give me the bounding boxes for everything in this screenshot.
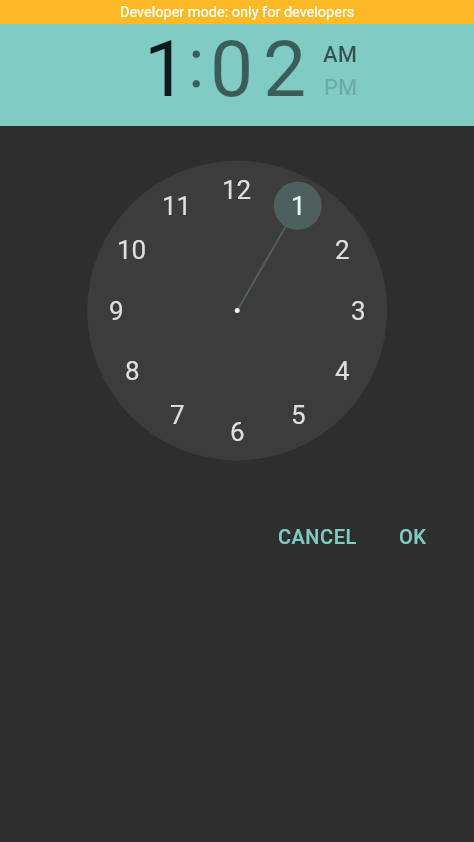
staticText: 9 bbox=[109, 296, 124, 326]
staticText: 12 bbox=[222, 175, 252, 205]
staticText: 1 bbox=[144, 25, 188, 115]
staticText: : bbox=[188, 24, 205, 104]
button[interactable]: 2 bbox=[0, 0, 48, 48]
button[interactable]: 1 bbox=[0, 0, 48, 48]
staticText: OK bbox=[399, 525, 427, 548]
button[interactable]: 5 bbox=[0, 0, 48, 48]
staticText: 2 bbox=[263, 25, 307, 115]
staticText: 5 bbox=[291, 400, 306, 430]
button[interactable]: 3 bbox=[0, 0, 48, 48]
button[interactable]: 6 bbox=[0, 0, 48, 48]
button[interactable]: AM bbox=[0, 0, 80, 40]
staticText: 0 bbox=[210, 25, 254, 115]
button[interactable]: 8 bbox=[0, 0, 48, 48]
staticText: AM bbox=[323, 42, 357, 68]
staticText: PM bbox=[324, 75, 358, 101]
button[interactable]: 11 bbox=[0, 0, 48, 48]
staticText: 10 bbox=[117, 235, 147, 265]
staticText: 7 bbox=[170, 400, 185, 430]
staticText: 6 bbox=[230, 417, 245, 447]
staticText: 2 bbox=[335, 235, 350, 265]
button[interactable]: 10 bbox=[0, 0, 48, 48]
staticText: 8 bbox=[125, 356, 140, 386]
staticText: 4 bbox=[335, 356, 350, 386]
button[interactable]: 7 bbox=[0, 0, 48, 48]
staticText: Developer mode: only for developers bbox=[120, 4, 355, 21]
staticText: CANCEL bbox=[278, 525, 357, 548]
button[interactable]: PM bbox=[0, 0, 80, 40]
button[interactable]: CANCEL bbox=[257, 512, 377, 560]
button[interactable]: 4 bbox=[0, 0, 48, 48]
staticText: 1 bbox=[291, 191, 306, 221]
staticText: 3 bbox=[351, 296, 366, 326]
button[interactable]: OK bbox=[373, 512, 453, 560]
staticText: 11 bbox=[162, 191, 192, 221]
button[interactable]: 12 bbox=[0, 0, 48, 48]
button[interactable]: 9 bbox=[0, 0, 48, 48]
